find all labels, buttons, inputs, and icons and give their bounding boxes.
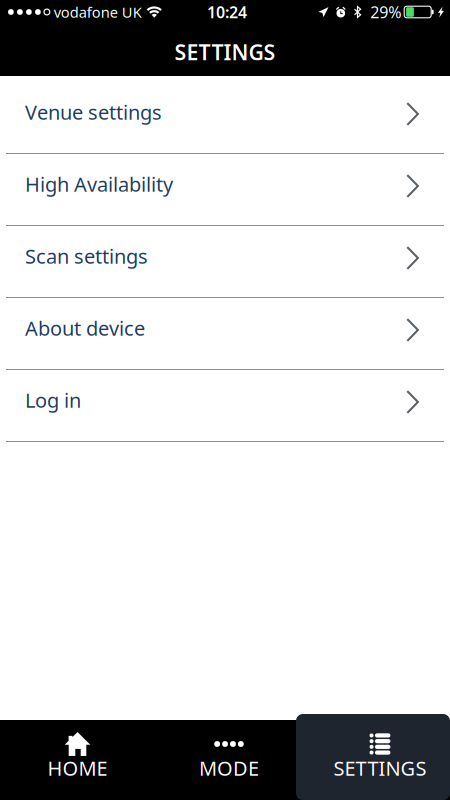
staticText: 29% (370, 1, 401, 23)
button[interactable]: MODE (155, 720, 303, 800)
staticText: High Availability (25, 171, 173, 197)
staticText: 10:24 (207, 1, 247, 23)
button[interactable]: Log in (0, 370, 450, 442)
staticText: SETTINGS (174, 38, 275, 66)
button[interactable]: Scan settings (0, 226, 450, 298)
staticText: Log in (25, 387, 81, 413)
button[interactable]: SETTINGS (303, 720, 450, 800)
staticText: Scan settings (25, 243, 148, 269)
button[interactable]: HOME (0, 720, 155, 800)
staticText: vodafone UK (54, 2, 142, 22)
staticText: HOME (47, 755, 107, 781)
staticText: SETTINGS (333, 755, 426, 781)
button[interactable]: High Availability (0, 154, 450, 226)
button[interactable]: Venue settings (0, 82, 450, 154)
staticText: About device (25, 315, 145, 341)
button[interactable]: About device (0, 298, 450, 370)
staticText: MODE (199, 755, 259, 781)
staticText: Venue settings (25, 99, 162, 125)
